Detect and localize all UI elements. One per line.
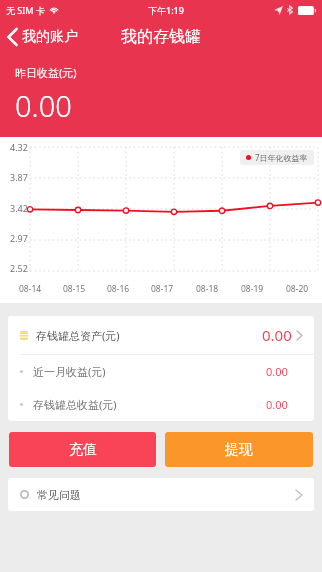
staticText: 08-20 — [286, 283, 309, 295]
staticText: 我的存钱罐 — [121, 27, 201, 47]
staticText: 08-14 — [19, 283, 42, 295]
button[interactable]: 充值 — [9, 432, 156, 467]
staticText: 充值 — [69, 441, 97, 459]
staticText: 08-18 — [196, 283, 219, 295]
staticText: 0.00 — [266, 364, 288, 379]
staticText: 0.00 — [266, 397, 288, 412]
staticText: 无 SIM 卡 — [6, 4, 45, 16]
staticText: 昨日收益(元) — [15, 65, 77, 80]
button[interactable]: 存钱罐总资产(元) — [8, 316, 314, 354]
staticText: 存钱罐总收益(元) — [33, 397, 117, 412]
staticText: 近一月收益(元) — [33, 364, 106, 379]
staticText: 4.32 — [10, 141, 28, 153]
staticText: 2.97 — [10, 232, 28, 244]
staticText: 下午1:19 — [148, 4, 184, 16]
button[interactable]: 我的账户 — [0, 24, 88, 50]
button[interactable]: 常见问题 — [8, 478, 314, 511]
staticText: 08-16 — [107, 283, 130, 295]
staticText: 2.52 — [10, 262, 28, 274]
button[interactable]: 提现 — [165, 432, 313, 467]
staticText: 存钱罐总资产(元) — [36, 328, 120, 343]
staticText: 08-17 — [151, 283, 174, 295]
staticText: 08-19 — [241, 283, 264, 295]
staticText: 0.00 — [262, 325, 292, 345]
button[interactable]: 近一月收益(元) — [8, 355, 314, 388]
staticText: 3.42 — [10, 202, 28, 214]
staticText: 08-15 — [63, 283, 86, 295]
staticText: 我的账户 — [22, 28, 78, 46]
staticText: 提现 — [225, 441, 253, 459]
button[interactable]: 存钱罐总收益(元) — [8, 388, 314, 421]
staticText: 7日年化收益率 — [255, 152, 308, 163]
staticText: 0.00 — [15, 86, 72, 125]
staticText: 常见问题 — [37, 488, 81, 502]
staticText: 3.87 — [10, 171, 28, 183]
